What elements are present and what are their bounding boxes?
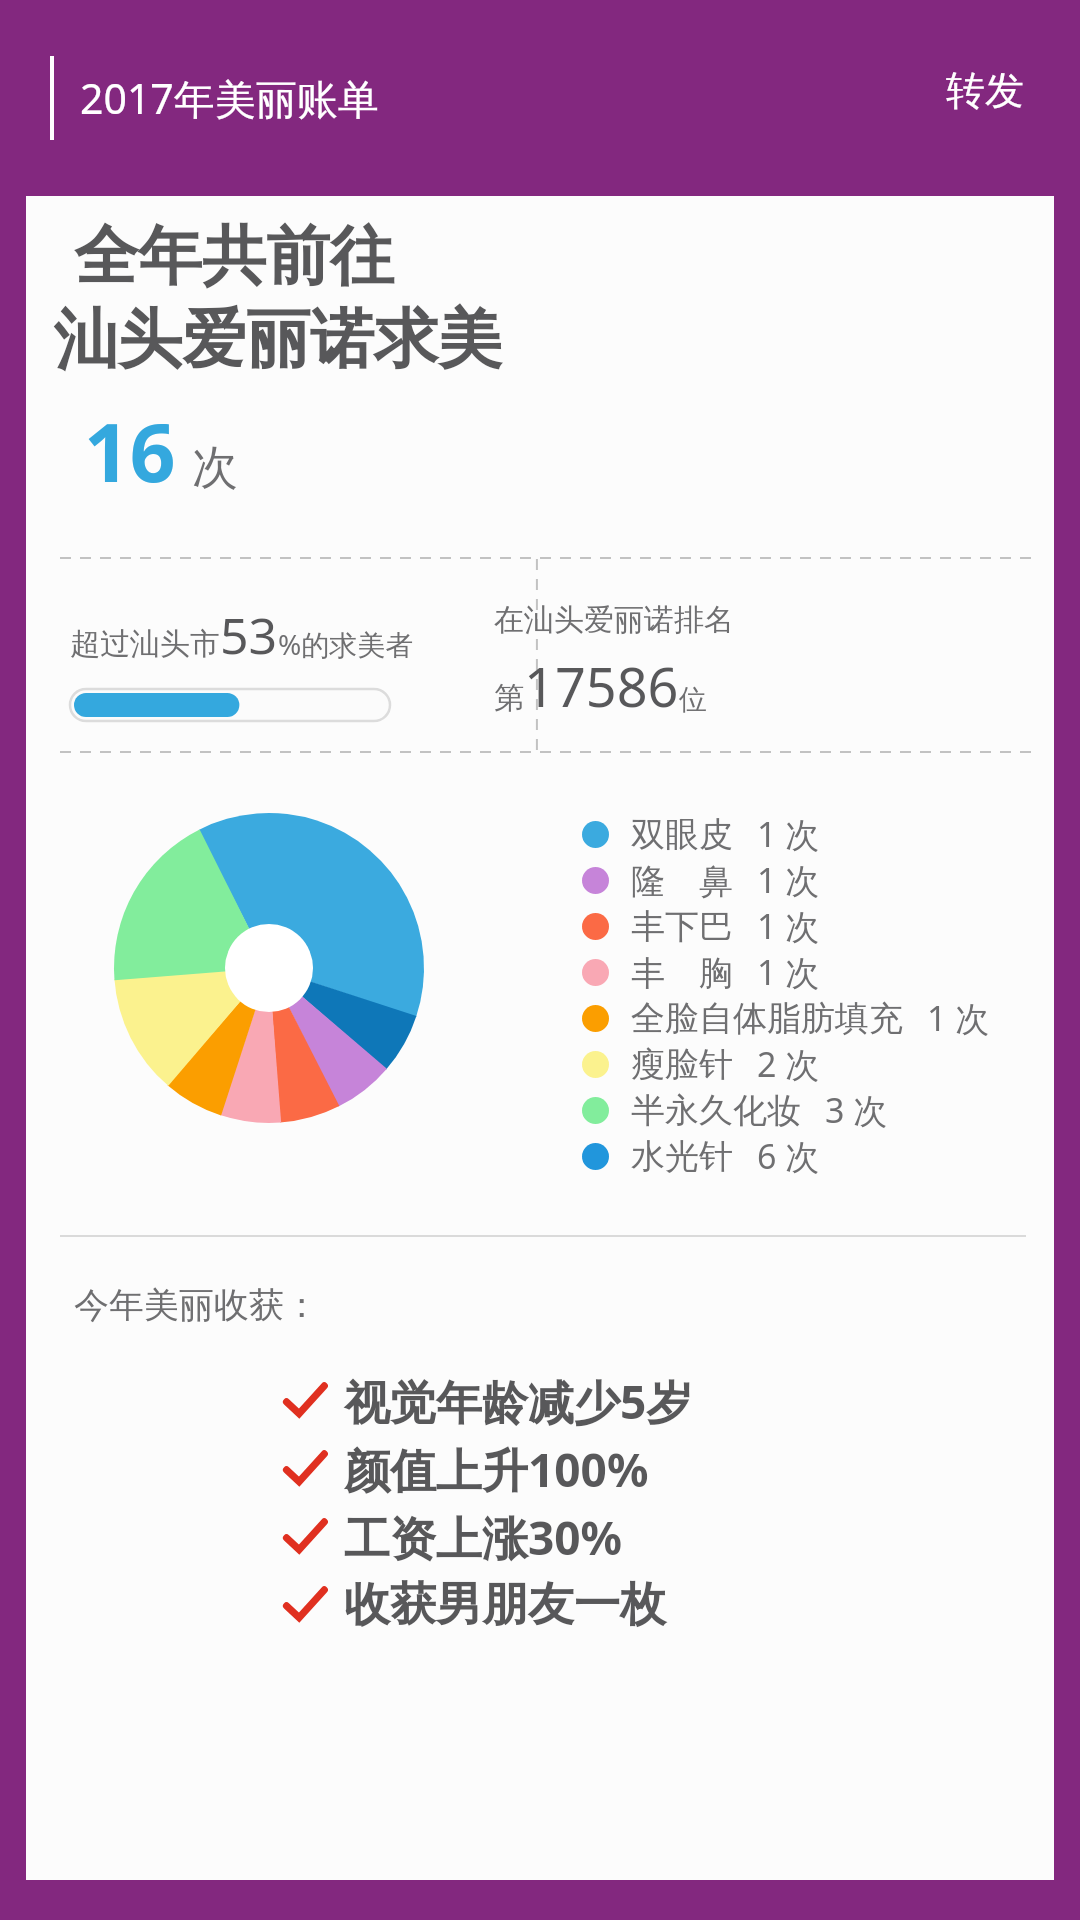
- staticText: 1 次: [757, 949, 820, 995]
- staticText: 在汕头爱丽诺排名: [494, 601, 734, 639]
- staticText: 转发: [946, 66, 1024, 115]
- button[interactable]: 水光针: [582, 1133, 820, 1179]
- staticText: 丰 胸: [631, 949, 733, 995]
- staticText: 颜值上升100%: [344, 1438, 649, 1501]
- staticText: 隆 鼻: [631, 857, 733, 903]
- staticText: 半永久化妆: [631, 1089, 801, 1132]
- button[interactable]: Check: [284, 1367, 693, 1435]
- button[interactable]: Check: [284, 1435, 649, 1503]
- button[interactable]: Check: [284, 1571, 666, 1639]
- staticText: 汕头爱丽诺求美: [54, 299, 502, 380]
- staticText: 1 次: [927, 995, 990, 1041]
- button[interactable]: 双眼皮: [582, 811, 820, 857]
- staticText: 丰下巴: [631, 905, 733, 948]
- staticText: 水光针: [631, 1135, 733, 1178]
- other: Check: [284, 1448, 326, 1490]
- staticText: 1 次: [757, 811, 820, 857]
- staticText: 视觉年龄减少5岁: [344, 1370, 693, 1433]
- button[interactable]: 转发: [936, 56, 1034, 125]
- staticText: 第: [494, 679, 524, 717]
- staticText: 3 次: [825, 1087, 888, 1133]
- staticText: %的求美者: [278, 625, 414, 663]
- staticText: 次: [192, 439, 238, 497]
- staticText: 16: [84, 396, 176, 505]
- staticText: 6 次: [757, 1133, 820, 1179]
- button[interactable]: 全脸自体脂肪填充: [582, 995, 990, 1041]
- button[interactable]: 隆 鼻: [582, 857, 820, 903]
- staticText: 1 次: [757, 903, 820, 949]
- staticText: 全年共前往: [74, 216, 394, 297]
- other: Check: [284, 1516, 326, 1558]
- button[interactable]: 半永久化妆: [582, 1087, 888, 1133]
- staticText: 超过汕头市: [70, 625, 220, 663]
- other: Check: [284, 1584, 326, 1626]
- staticText: 位: [679, 682, 707, 717]
- staticText: 1 次: [757, 857, 820, 903]
- staticText: 2017年美丽账单: [80, 70, 379, 126]
- button[interactable]: Check: [284, 1503, 623, 1571]
- staticText: 2 次: [757, 1041, 820, 1087]
- staticText: 17586: [524, 649, 679, 723]
- staticText: 双眼皮: [631, 813, 733, 856]
- other: Check: [284, 1380, 326, 1422]
- button[interactable]: 丰下巴: [582, 903, 820, 949]
- staticText: 工资上涨30%: [344, 1506, 623, 1569]
- staticText: 今年美丽收获：: [74, 1283, 319, 1327]
- staticText: 全脸自体脂肪填充: [631, 997, 903, 1040]
- button[interactable]: 丰 胸: [582, 949, 820, 995]
- button[interactable]: 瘦脸针: [582, 1041, 820, 1087]
- staticText: 53: [220, 601, 278, 669]
- staticText: 收获男朋友一枚: [344, 1576, 666, 1634]
- staticText: 瘦脸针: [631, 1043, 733, 1086]
